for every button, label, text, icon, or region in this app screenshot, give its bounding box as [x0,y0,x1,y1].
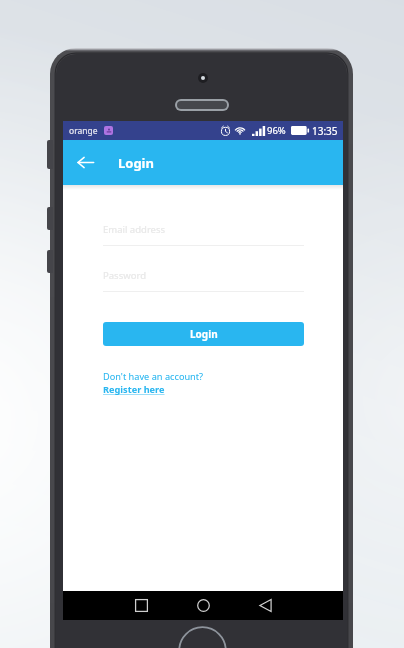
button[interactable]: Home [187,591,219,620]
staticText: 13:35 [312,124,338,138]
staticText: Login [118,154,154,172]
button[interactable]: Email address [103,223,304,246]
staticText: orange [69,125,98,137]
button[interactable]: Recents [125,591,157,620]
button[interactable]: Register here [103,383,165,396]
staticText: Login [190,327,218,341]
button[interactable]: Back [249,591,281,620]
staticText: Email address [103,223,166,236]
staticText: Password [103,269,146,282]
button[interactable]: Back [63,140,108,185]
button[interactable]: Login [103,322,304,346]
button[interactable]: Password [103,269,304,292]
staticText: Don't have an account? [103,370,204,383]
staticText: 96% [267,124,286,137]
